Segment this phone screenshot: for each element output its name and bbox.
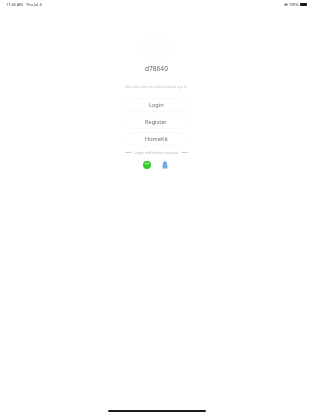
button[interactable]: HomeKit [125, 132, 187, 146]
staticText: Register [145, 118, 167, 126]
button[interactable]: Login [125, 98, 187, 112]
staticText: HomeKit [145, 135, 168, 143]
staticText: Click icon above to access without sign … [125, 85, 187, 89]
staticText: 11:44 AM [6, 2, 23, 7]
staticText: Login [149, 101, 164, 109]
button[interactable]: Login with WeChat [143, 161, 151, 169]
staticText: Login with other account [134, 150, 179, 155]
staticText: Thu Jul 4 [26, 2, 42, 7]
button[interactable]: Register [125, 115, 187, 129]
button[interactable]: Login with QQ [161, 161, 169, 169]
staticText: 100% [289, 2, 299, 7]
staticText: d78640 [145, 64, 168, 73]
